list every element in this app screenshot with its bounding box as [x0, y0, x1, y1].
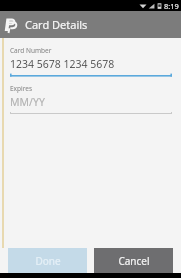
staticText: 1234 5678 1234 5678 [10, 57, 115, 71]
staticText: Cancel [118, 254, 150, 268]
staticText: Done [35, 254, 61, 268]
button[interactable]: Cancel [94, 248, 173, 273]
button[interactable]: Done [8, 248, 87, 273]
staticText: Expires [10, 84, 33, 93]
staticText: Card Number [10, 46, 52, 55]
staticText: 8:19 [164, 1, 179, 11]
staticText: MM/YY [10, 95, 45, 109]
staticText: Card Details [25, 17, 88, 32]
